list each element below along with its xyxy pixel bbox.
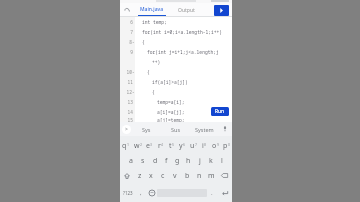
staticText: 8: [204, 142, 207, 147]
button[interactable]: f: [161, 153, 172, 168]
staticText: 10: [126, 69, 132, 75]
staticText: p: [223, 141, 228, 151]
button[interactable]: u: [188, 138, 199, 153]
button[interactable]: 13: [120, 97, 232, 107]
button[interactable]: b: [181, 168, 193, 183]
button[interactable]: Expand toolbar: [122, 125, 131, 134]
staticText: Run: [215, 108, 225, 115]
button[interactable]: 14: [120, 107, 232, 117]
button[interactable]: Run: [211, 107, 229, 116]
button[interactable]: 9: [120, 47, 232, 57]
button[interactable]: Output: [174, 5, 198, 16]
button[interactable]: m: [205, 168, 217, 183]
button[interactable]: a: [125, 153, 137, 168]
button[interactable]: 6: [120, 17, 232, 27]
button[interactable]: q: [120, 138, 132, 153]
button[interactable]: w: [132, 138, 144, 153]
staticText: l: [221, 156, 223, 166]
button[interactable]: l: [216, 153, 227, 168]
button[interactable]: 12: [120, 87, 232, 97]
button[interactable]: Run code: [214, 5, 229, 16]
button[interactable]: Undo: [122, 5, 132, 15]
staticText: u: [190, 141, 195, 151]
button[interactable]: 10: [120, 67, 232, 77]
staticText: w: [134, 141, 140, 151]
button[interactable]: Enter: [217, 183, 232, 202]
staticText: 3: [150, 142, 153, 147]
button[interactable]: i: [199, 138, 210, 153]
staticText: Sus: [171, 126, 181, 133]
staticText: Main.java: [140, 6, 164, 13]
button[interactable]: .: [207, 183, 217, 202]
staticText: r: [158, 141, 161, 151]
staticText: 7: [130, 29, 133, 35]
staticText: Output: [178, 7, 195, 14]
button[interactable]: ?123: [120, 183, 136, 202]
staticText: b: [185, 171, 190, 181]
staticText: for(int i=0;i<a.length-1;i++): [142, 29, 222, 35]
staticText: 15: [127, 117, 133, 122]
button[interactable]: h: [183, 153, 194, 168]
staticText: 9: [130, 49, 133, 55]
button[interactable]: 11: [120, 77, 232, 87]
button[interactable]: r: [155, 138, 166, 153]
staticText: i: [202, 141, 204, 151]
button[interactable]: j: [194, 153, 205, 168]
button[interactable]: c: [157, 168, 169, 183]
staticText: h: [186, 156, 191, 166]
staticText: n: [197, 171, 202, 181]
staticText: 2: [140, 142, 143, 147]
staticText: 9: [217, 142, 220, 147]
staticText: f: [165, 156, 168, 166]
button[interactable]: Emoji: [146, 183, 157, 202]
button[interactable]: z: [134, 168, 145, 183]
staticText: 6: [130, 19, 133, 25]
staticText: ,: [140, 189, 142, 197]
staticText: x: [149, 171, 153, 181]
staticText: 1: [127, 142, 130, 147]
staticText: 5: [172, 142, 175, 147]
button[interactable]: v: [169, 168, 181, 183]
button[interactable]: y: [177, 138, 188, 153]
staticText: q: [122, 141, 127, 151]
staticText: System: [195, 126, 214, 133]
staticText: -: [132, 69, 135, 75]
staticText: 7: [195, 142, 198, 147]
staticText: 14: [127, 109, 133, 115]
button[interactable]: Voice input: [219, 122, 231, 136]
button[interactable]: t: [166, 138, 177, 153]
staticText: for(int j=i+1;j<a.length;j: [147, 49, 219, 55]
button[interactable]: g: [172, 153, 183, 168]
button[interactable]: 8: [120, 37, 232, 47]
button[interactable]: x: [145, 168, 157, 183]
staticText: -: [132, 89, 135, 95]
button[interactable]: 15: [120, 117, 232, 122]
staticText: a[j]=temp;: [157, 117, 185, 122]
button[interactable]: p: [221, 138, 232, 153]
button[interactable]: o: [210, 138, 221, 153]
button[interactable]: Main.java: [136, 5, 168, 16]
button[interactable]: ++): [120, 57, 232, 67]
button[interactable]: Shift: [120, 168, 134, 183]
button[interactable]: Sys: [131, 122, 161, 136]
staticText: m: [208, 171, 215, 181]
staticText: z: [138, 171, 142, 181]
button[interactable]: System: [190, 122, 219, 136]
button[interactable]: ,: [136, 183, 146, 202]
staticText: int temp;: [142, 19, 167, 25]
staticText: 4: [161, 142, 164, 147]
button[interactable]: n: [193, 168, 205, 183]
button[interactable]: k: [205, 153, 216, 168]
button[interactable]: e: [144, 138, 155, 153]
button[interactable]: s: [137, 153, 149, 168]
staticText: t: [169, 141, 172, 151]
button[interactable]: Sus: [161, 122, 190, 136]
button[interactable]: d: [149, 153, 161, 168]
staticText: {: [147, 69, 150, 75]
staticText: c: [161, 171, 165, 181]
staticText: s: [141, 156, 145, 166]
button[interactable]: 7: [120, 27, 232, 37]
staticText: Sys: [142, 126, 151, 133]
button[interactable]: Backspace: [217, 168, 232, 183]
